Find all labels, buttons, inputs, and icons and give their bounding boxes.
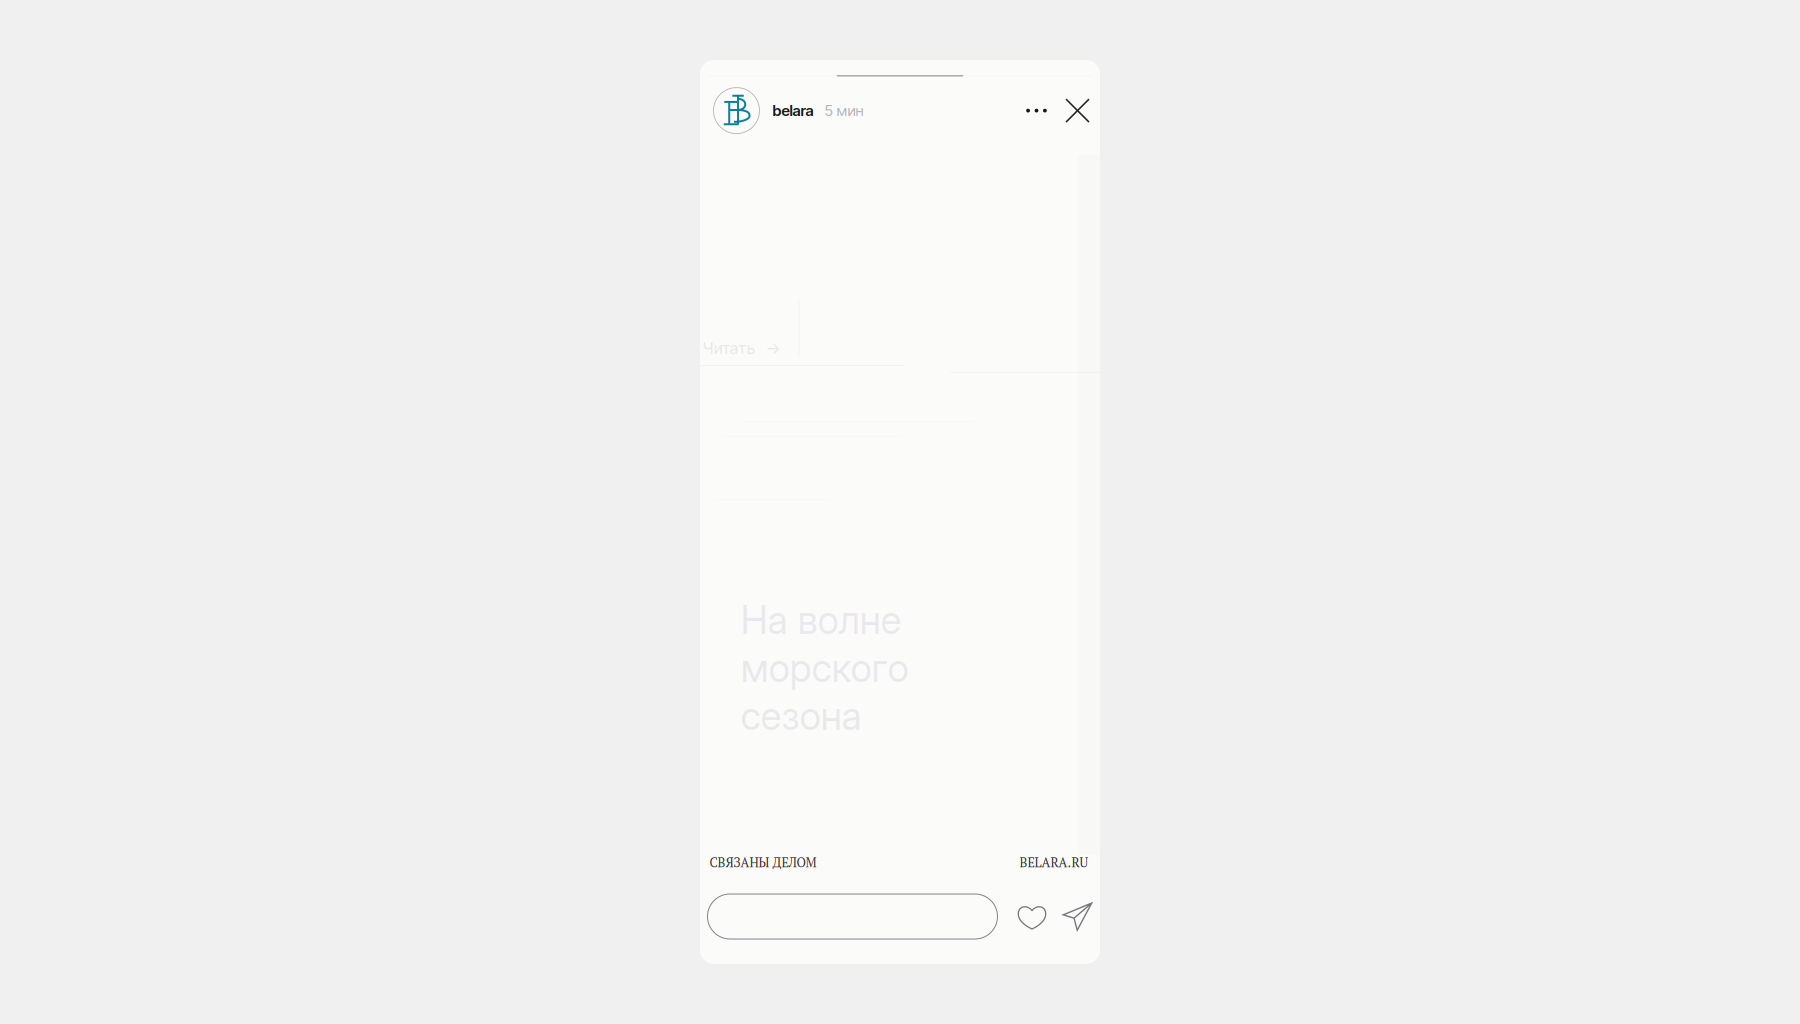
button[interactable]: belara: [713, 88, 863, 134]
staticText: Читать →: [702, 339, 780, 358]
staticText: BELARA.RU: [1019, 854, 1088, 871]
button[interactable]: Share: [1058, 894, 1096, 939]
button[interactable]: Send message: [707, 894, 997, 939]
staticText: СВЯЗАНЫ ДЕЛОМ: [709, 854, 816, 871]
staticText: сезона: [740, 693, 861, 739]
staticText: морского: [740, 645, 908, 691]
staticText: belara: [772, 101, 813, 120]
staticText: 5 мин: [824, 101, 863, 120]
button[interactable]: More options: [1012, 92, 1060, 130]
staticText: На волне: [740, 597, 901, 643]
button[interactable]: Close: [1060, 92, 1094, 130]
button[interactable]: Like: [1005, 894, 1058, 939]
